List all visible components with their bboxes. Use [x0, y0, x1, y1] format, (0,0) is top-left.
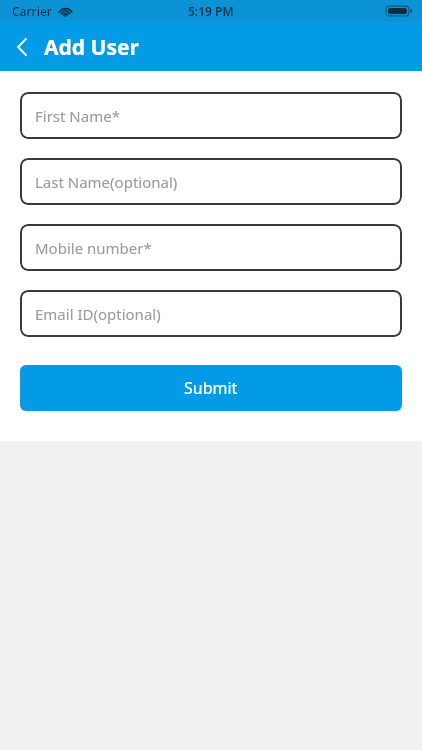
staticText: Add User — [44, 33, 139, 62]
button[interactable]: First Name* — [20, 92, 402, 139]
staticText: Last Name(optional) — [35, 172, 178, 192]
staticText: Email ID(optional) — [35, 304, 161, 324]
staticText: Mobile number* — [35, 238, 152, 258]
button[interactable]: Email ID(optional) — [20, 290, 402, 337]
staticText: Submit — [184, 377, 238, 399]
button[interactable]: Back — [0, 25, 44, 69]
staticText: 5:19 PM — [188, 3, 234, 19]
staticText: First Name* — [35, 106, 120, 126]
button[interactable]: Last Name(optional) — [20, 158, 402, 205]
button[interactable]: Submit — [20, 365, 402, 411]
staticText: Carrier — [12, 3, 52, 19]
button[interactable]: Mobile number* — [20, 224, 402, 271]
